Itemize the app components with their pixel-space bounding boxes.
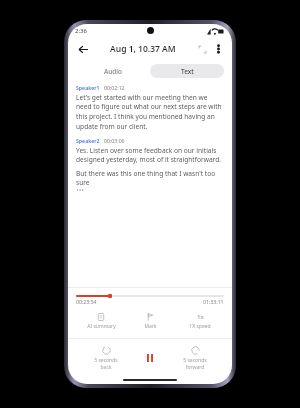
staticText: 01:33:11 (203, 298, 224, 305)
button[interactable]: Audio (76, 64, 150, 78)
staticText: 1X speed (189, 323, 211, 330)
button[interactable]: 5 seconds forward (173, 345, 217, 371)
staticText: 00:02:12 (104, 84, 125, 91)
button[interactable]: Text (150, 64, 224, 78)
staticText: Speaker2 (76, 137, 100, 144)
button[interactable]: AI summary (78, 312, 124, 331)
button[interactable]: Back (74, 40, 92, 58)
staticText: 2:36 (75, 27, 87, 35)
button[interactable]: 5 seconds back (84, 345, 128, 371)
staticText: But there was this one thing that I wasn… (76, 169, 224, 187)
staticText: Aug 1, 10.37 AM (110, 43, 176, 55)
staticText: Let's get started with our meeting then … (76, 93, 224, 131)
staticText: 1x (197, 313, 204, 321)
staticText: 5 seconds back (94, 357, 118, 370)
staticText: Text (181, 67, 194, 76)
button[interactable]: Pause (137, 345, 163, 371)
staticText: 00:23:54 (76, 298, 97, 305)
staticText: Audio (104, 67, 123, 76)
staticText: Yes. Listen over some feedback on our in… (76, 146, 224, 164)
staticText: Speaker1 (76, 84, 100, 91)
staticText: AI summary (87, 323, 116, 330)
button[interactable]: More options (210, 41, 226, 57)
staticText: 5 seconds forward (183, 357, 207, 370)
staticText: 00:03:06 (104, 137, 125, 144)
button[interactable]: Mark (127, 312, 173, 331)
staticText: Mark (144, 323, 157, 330)
button[interactable]: 1x (177, 312, 223, 331)
button[interactable]: Expand (194, 41, 210, 57)
